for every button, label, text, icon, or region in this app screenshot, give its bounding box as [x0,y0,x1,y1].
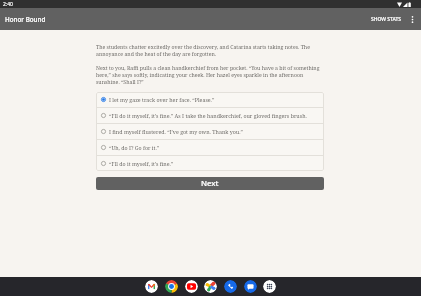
button[interactable]: Gmail [145,280,158,293]
button[interactable]: I let my gaze track over her face. “Plea… [96,92,324,107]
staticText: “I’ll do it myself, it’s fine.” As I tak… [109,112,307,119]
button[interactable]: Messages [244,280,257,293]
staticText: “Uh, do I? Go for it.” [109,144,160,151]
staticText: I let my gaze track over her face. “Plea… [109,96,215,103]
button[interactable]: Chrome [165,280,178,293]
button[interactable]: More options [405,8,421,30]
staticText: The students chatter excitedly over the … [96,43,324,57]
staticText: Next [201,178,219,189]
button[interactable]: “I’ll do it myself, it’s fine.” As I tak… [96,108,324,123]
button[interactable]: SHOW STATS [368,12,405,27]
button[interactable]: Google Photos [204,280,217,293]
button[interactable]: YouTube [185,280,198,293]
button[interactable]: “I’ll do it myself, it’s fine.” [96,156,324,171]
button[interactable]: Next [96,177,324,190]
button[interactable]: “Uh, do I? Go for it.” [96,140,324,155]
staticText: I find myself flustered. “I’ve got my ow… [109,128,243,135]
staticText: Next to you, Raffi pulls a clean handker… [96,64,324,85]
staticText: 2:40 [3,1,13,8]
staticText: “I’ll do it myself, it’s fine.” [109,160,174,167]
staticText: SHOW STATS [371,16,402,23]
staticText: Honor Bound [5,15,46,24]
button[interactable]: I find myself flustered. “I’ve got my ow… [96,124,324,139]
button[interactable]: Phone [224,280,237,293]
button[interactable]: All apps [263,280,276,293]
